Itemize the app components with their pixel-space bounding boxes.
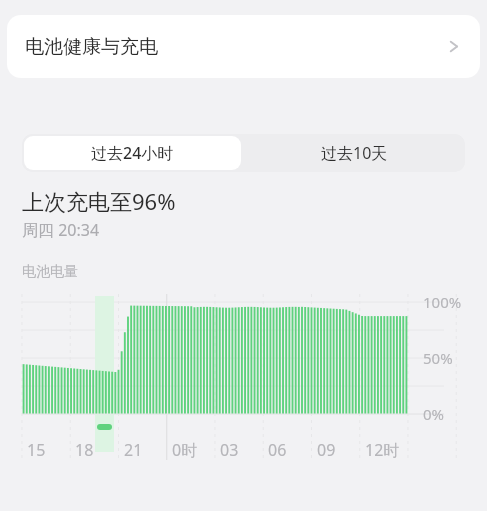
staticText: 0时 xyxy=(172,439,198,461)
staticText: 21 xyxy=(124,439,143,461)
staticText: 电池健康与充电 xyxy=(25,35,158,59)
staticText: 06 xyxy=(268,439,287,461)
staticText: 周四 20:34 xyxy=(22,219,100,241)
button[interactable]: 过去10天 xyxy=(243,134,465,172)
staticText: 0% xyxy=(423,404,445,424)
other: Open battery health and charging xyxy=(446,39,461,54)
staticText: 上次充电至96% xyxy=(22,186,176,216)
button[interactable]: 过去24小时 xyxy=(24,136,241,170)
staticText: 过去10天 xyxy=(321,142,388,164)
staticText: 电池电量 xyxy=(22,263,78,281)
staticText: 50% xyxy=(423,348,453,368)
button[interactable]: 电池健康与充电 xyxy=(7,15,480,78)
staticText: 18 xyxy=(75,439,94,461)
staticText: 过去24小时 xyxy=(91,142,174,164)
staticText: 12时 xyxy=(365,439,400,461)
staticText: 09 xyxy=(317,439,336,461)
staticText: 100% xyxy=(423,292,462,312)
staticText: 15 xyxy=(27,439,46,461)
staticText: 03 xyxy=(220,439,239,461)
